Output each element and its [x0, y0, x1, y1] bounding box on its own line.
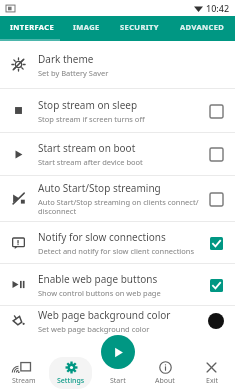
- button[interactable]: Start stream: [101, 335, 135, 369]
- staticText: Exit: [206, 376, 218, 386]
- staticText: 10:42: [206, 2, 230, 14]
- staticText: Auto Start/Stop streaming on clients con…: [38, 197, 200, 217]
- button[interactable]: Start stream on boot: [0, 133, 235, 175]
- button[interactable]: IMAGE: [64, 22, 109, 32]
- button[interactable]: Start: [94, 356, 141, 390]
- button[interactable]: Background color black: [208, 313, 224, 329]
- button[interactable]: Stop stream on sleep: [0, 89, 235, 132]
- staticText: Auto Start/Stop streaming: [38, 181, 161, 195]
- other: Exit: [205, 361, 218, 374]
- button[interactable]: Checked: [210, 279, 223, 292]
- staticText: Settings: [57, 376, 85, 386]
- staticText: Detect and notify for slow client connec…: [38, 246, 195, 256]
- button[interactable]: Unchecked: [210, 105, 223, 118]
- staticText: Stop stream if screen turns off: [38, 114, 145, 124]
- staticText: Show control buttons on web page: [38, 288, 161, 298]
- other: Stream: [18, 361, 31, 374]
- staticText: Stop stream on sleep: [38, 98, 138, 112]
- staticText: Set by Battery Saver: [38, 68, 109, 78]
- staticText: IMAGE: [73, 22, 100, 32]
- other: About: [159, 361, 172, 374]
- button[interactable]: Dark theme: [0, 41, 235, 88]
- button[interactable]: Exit: [188, 356, 235, 390]
- staticText: Start: [110, 376, 126, 386]
- staticText: Stream: [12, 376, 36, 386]
- button[interactable]: Notify for slow connections: [0, 222, 235, 263]
- staticText: Notify for slow connections: [38, 230, 166, 244]
- staticText: ADVANCED: [180, 22, 225, 32]
- button[interactable]: INTERFACE: [0, 22, 64, 32]
- button[interactable]: Checked: [210, 237, 223, 250]
- button[interactable]: Enable web page buttons: [0, 264, 235, 305]
- staticText: SECURITY: [120, 22, 159, 32]
- button[interactable]: About: [141, 356, 188, 390]
- staticText: INTERFACE: [10, 22, 55, 32]
- staticText: Start stream after device boot: [38, 157, 143, 167]
- staticText: Enable web page buttons: [38, 272, 158, 286]
- button[interactable]: Stream: [0, 356, 47, 390]
- staticText: Start stream on boot: [38, 141, 136, 155]
- staticText: Web page background color: [38, 308, 171, 322]
- button[interactable]: Web page background color: [0, 306, 235, 335]
- staticText: About: [155, 376, 175, 386]
- button[interactable]: Unchecked: [210, 193, 223, 206]
- staticText: Set web page background color: [38, 324, 150, 334]
- staticText: Dark theme: [38, 52, 94, 66]
- button[interactable]: Unchecked: [210, 148, 223, 161]
- button[interactable]: Auto Start/Stop streaming: [0, 176, 235, 221]
- button[interactable]: SECURITY: [109, 22, 169, 32]
- button[interactable]: ADVANCED: [169, 22, 235, 32]
- button[interactable]: Settings: [47, 356, 94, 390]
- other: Settings: [65, 361, 78, 374]
